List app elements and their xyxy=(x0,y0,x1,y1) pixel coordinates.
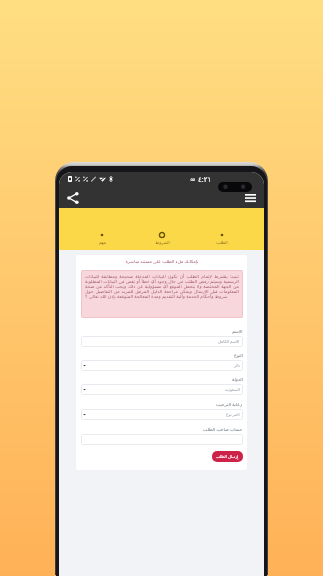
button[interactable]: Share xyxy=(63,188,83,208)
staticText: مهم xyxy=(99,240,106,245)
staticText: النوع xyxy=(234,353,243,358)
staticText: اختر نوع xyxy=(226,412,240,417)
staticText: الطلب xyxy=(216,240,228,245)
button[interactable]: الطلب xyxy=(192,231,252,245)
staticText: حساب صاحب الطلب xyxy=(203,426,243,432)
staticText: الشروط xyxy=(155,240,170,245)
staticText: بإمكانك ملء الطلب على مستند مباشرة xyxy=(81,258,243,264)
staticText: رعاية الترحيب xyxy=(216,401,243,407)
staticText: تنبيه: يشترط لإتمام الطلب أن تكون البيان… xyxy=(85,273,239,300)
button[interactable]: السعودية xyxy=(81,384,243,395)
staticText: الدولة xyxy=(232,377,243,382)
staticText: الاسم الكامل xyxy=(218,339,240,344)
staticText: الاسم xyxy=(232,329,243,334)
button[interactable]: إرسال الطلب xyxy=(212,451,243,462)
staticText: السعودية xyxy=(225,387,240,392)
button[interactable]: اختر نوع xyxy=(81,409,243,420)
button[interactable]: Open navigation menu xyxy=(240,188,260,208)
button[interactable]: مهم xyxy=(72,231,132,245)
button[interactable] xyxy=(81,434,243,445)
button[interactable]: ذكر xyxy=(81,360,243,371)
button[interactable]: الاسم الكامل xyxy=(81,336,243,347)
staticText: ٤:٢١ xyxy=(198,175,212,185)
staticText: إرسال الطلب xyxy=(216,454,239,459)
staticText: ∞ xyxy=(190,176,196,184)
button[interactable]: الشروط xyxy=(132,231,192,245)
staticText: ذكر xyxy=(234,363,240,368)
